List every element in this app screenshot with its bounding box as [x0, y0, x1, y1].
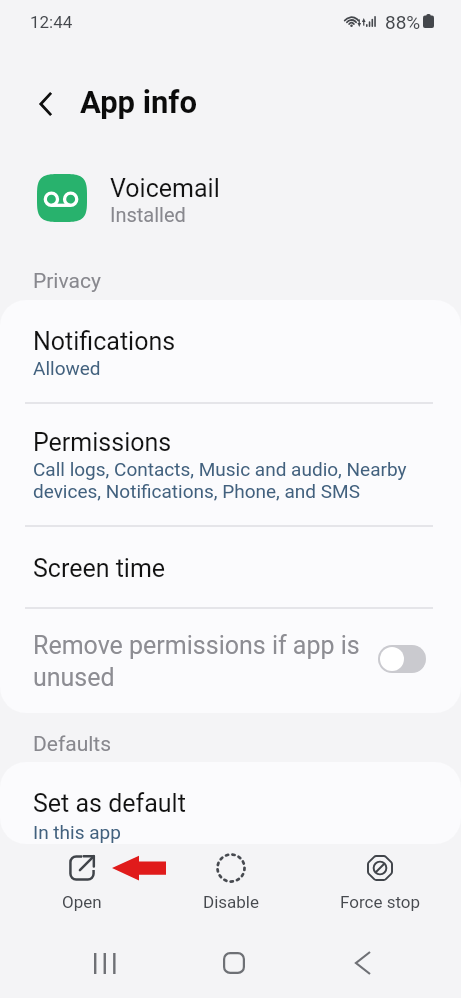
button[interactable]: Voicemail app icon [37, 174, 87, 222]
staticText: In this app [33, 821, 121, 843]
button[interactable]: Disable [176, 848, 286, 922]
staticText: Disable [203, 892, 260, 912]
button[interactable]: Remove permissions if app is unused [0, 607, 461, 713]
button[interactable]: Recent apps [77, 935, 133, 991]
staticText: Set as default [33, 789, 186, 818]
staticText: 12:44 [30, 12, 73, 32]
staticText: App info [80, 84, 197, 120]
staticText: Force stop [340, 892, 421, 912]
staticText: Installed [110, 203, 186, 226]
button[interactable]: Set as default [0, 762, 461, 844]
staticText: Remove permissions if app is unused [33, 631, 360, 692]
staticText: Call logs, Contacts, Music and audio, Ne… [33, 458, 407, 503]
button[interactable]: Remove permissions if app is unused [378, 645, 426, 673]
staticText: Screen time [33, 554, 166, 583]
button[interactable]: Notifications [0, 300, 461, 402]
staticText: Permissions [33, 428, 172, 457]
staticText: 88% [385, 11, 421, 33]
button[interactable]: Screen time [0, 525, 461, 607]
button[interactable]: Home [206, 935, 262, 991]
button[interactable]: Back [335, 935, 391, 991]
staticText: Open [62, 892, 102, 912]
button[interactable]: Navigate up [22, 80, 70, 128]
staticText: Allowed [33, 357, 101, 379]
button[interactable]: Force stop [325, 848, 435, 922]
staticText: Notifications [33, 327, 176, 356]
button[interactable]: Permissions [0, 402, 461, 525]
button[interactable]: Open [27, 848, 137, 922]
staticText: Voicemail [110, 174, 220, 203]
staticText: Privacy [33, 269, 101, 294]
staticText: Defaults [33, 732, 112, 757]
